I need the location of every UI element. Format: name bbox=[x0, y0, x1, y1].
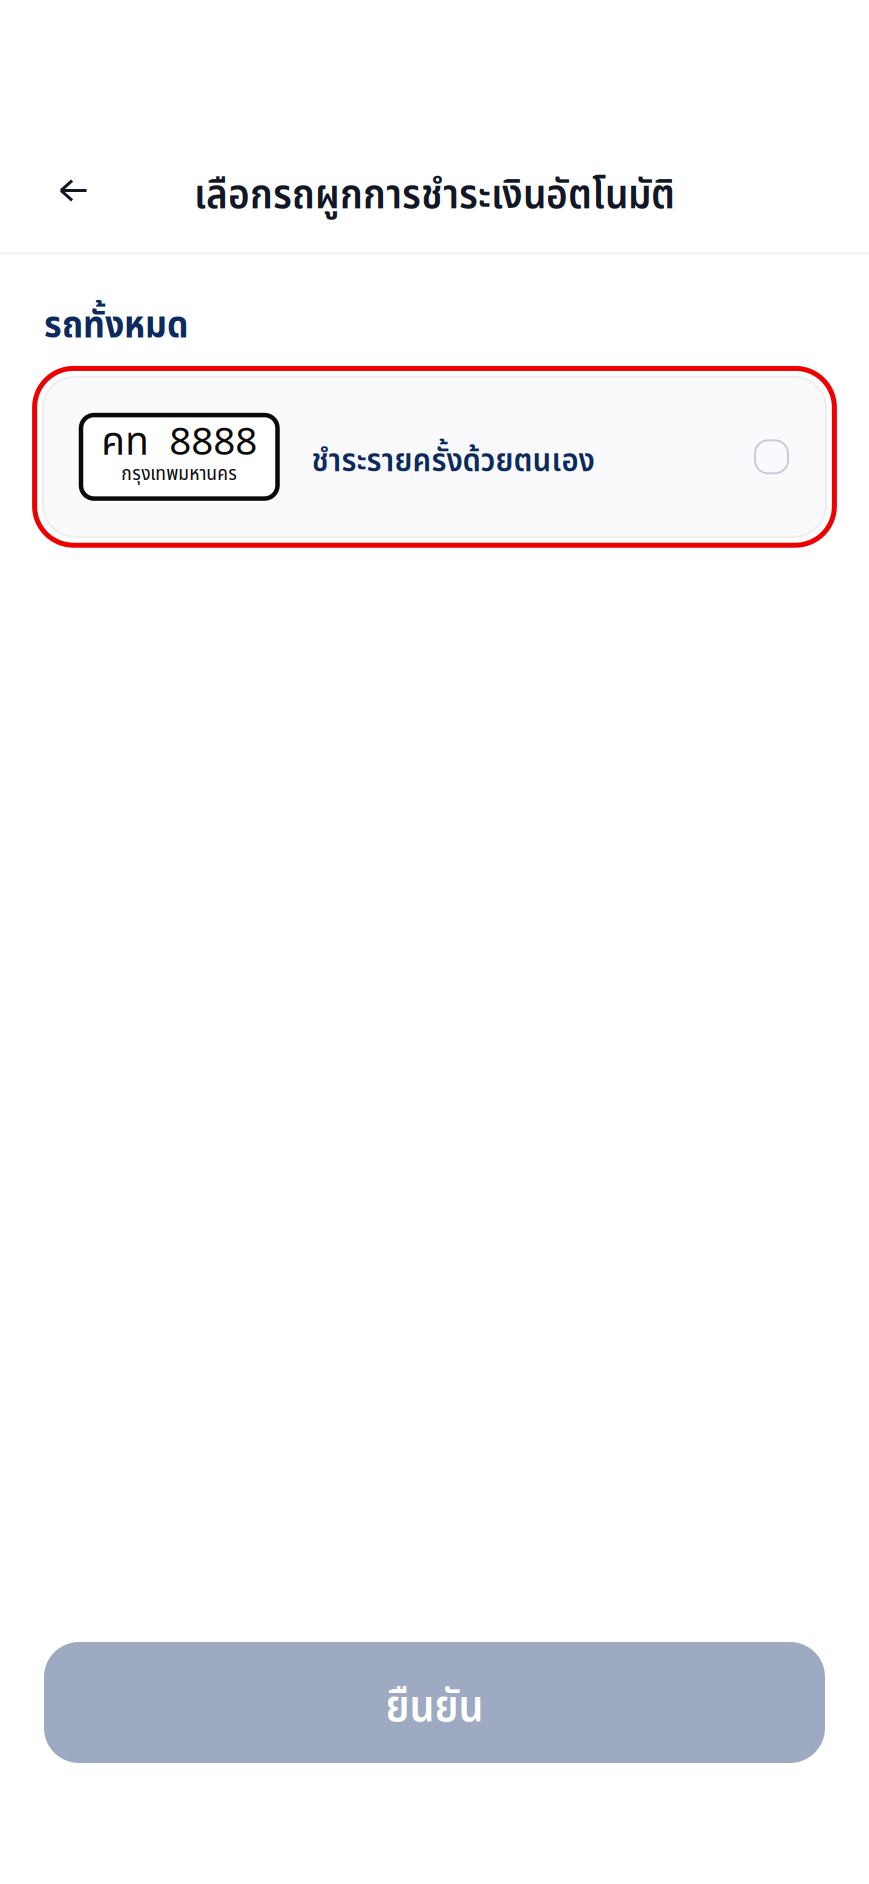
staticText: ยืนยัน bbox=[385, 1674, 483, 1741]
staticText: กรุงเทพมหานคร bbox=[121, 459, 237, 489]
staticText: ชำระรายครั้งด้วยตนเอง bbox=[311, 436, 594, 486]
button[interactable]: Back bbox=[41, 161, 106, 240]
staticText: เลือกรถผูกการชำระเงินอัตโนมัติ bbox=[194, 165, 675, 227]
button[interactable]: คท 8888 bbox=[35, 368, 834, 545]
staticText: รถทั้งหมด bbox=[44, 298, 188, 354]
button[interactable]: ยืนยัน bbox=[44, 1642, 825, 1763]
staticText: คท 8888 bbox=[101, 414, 257, 472]
